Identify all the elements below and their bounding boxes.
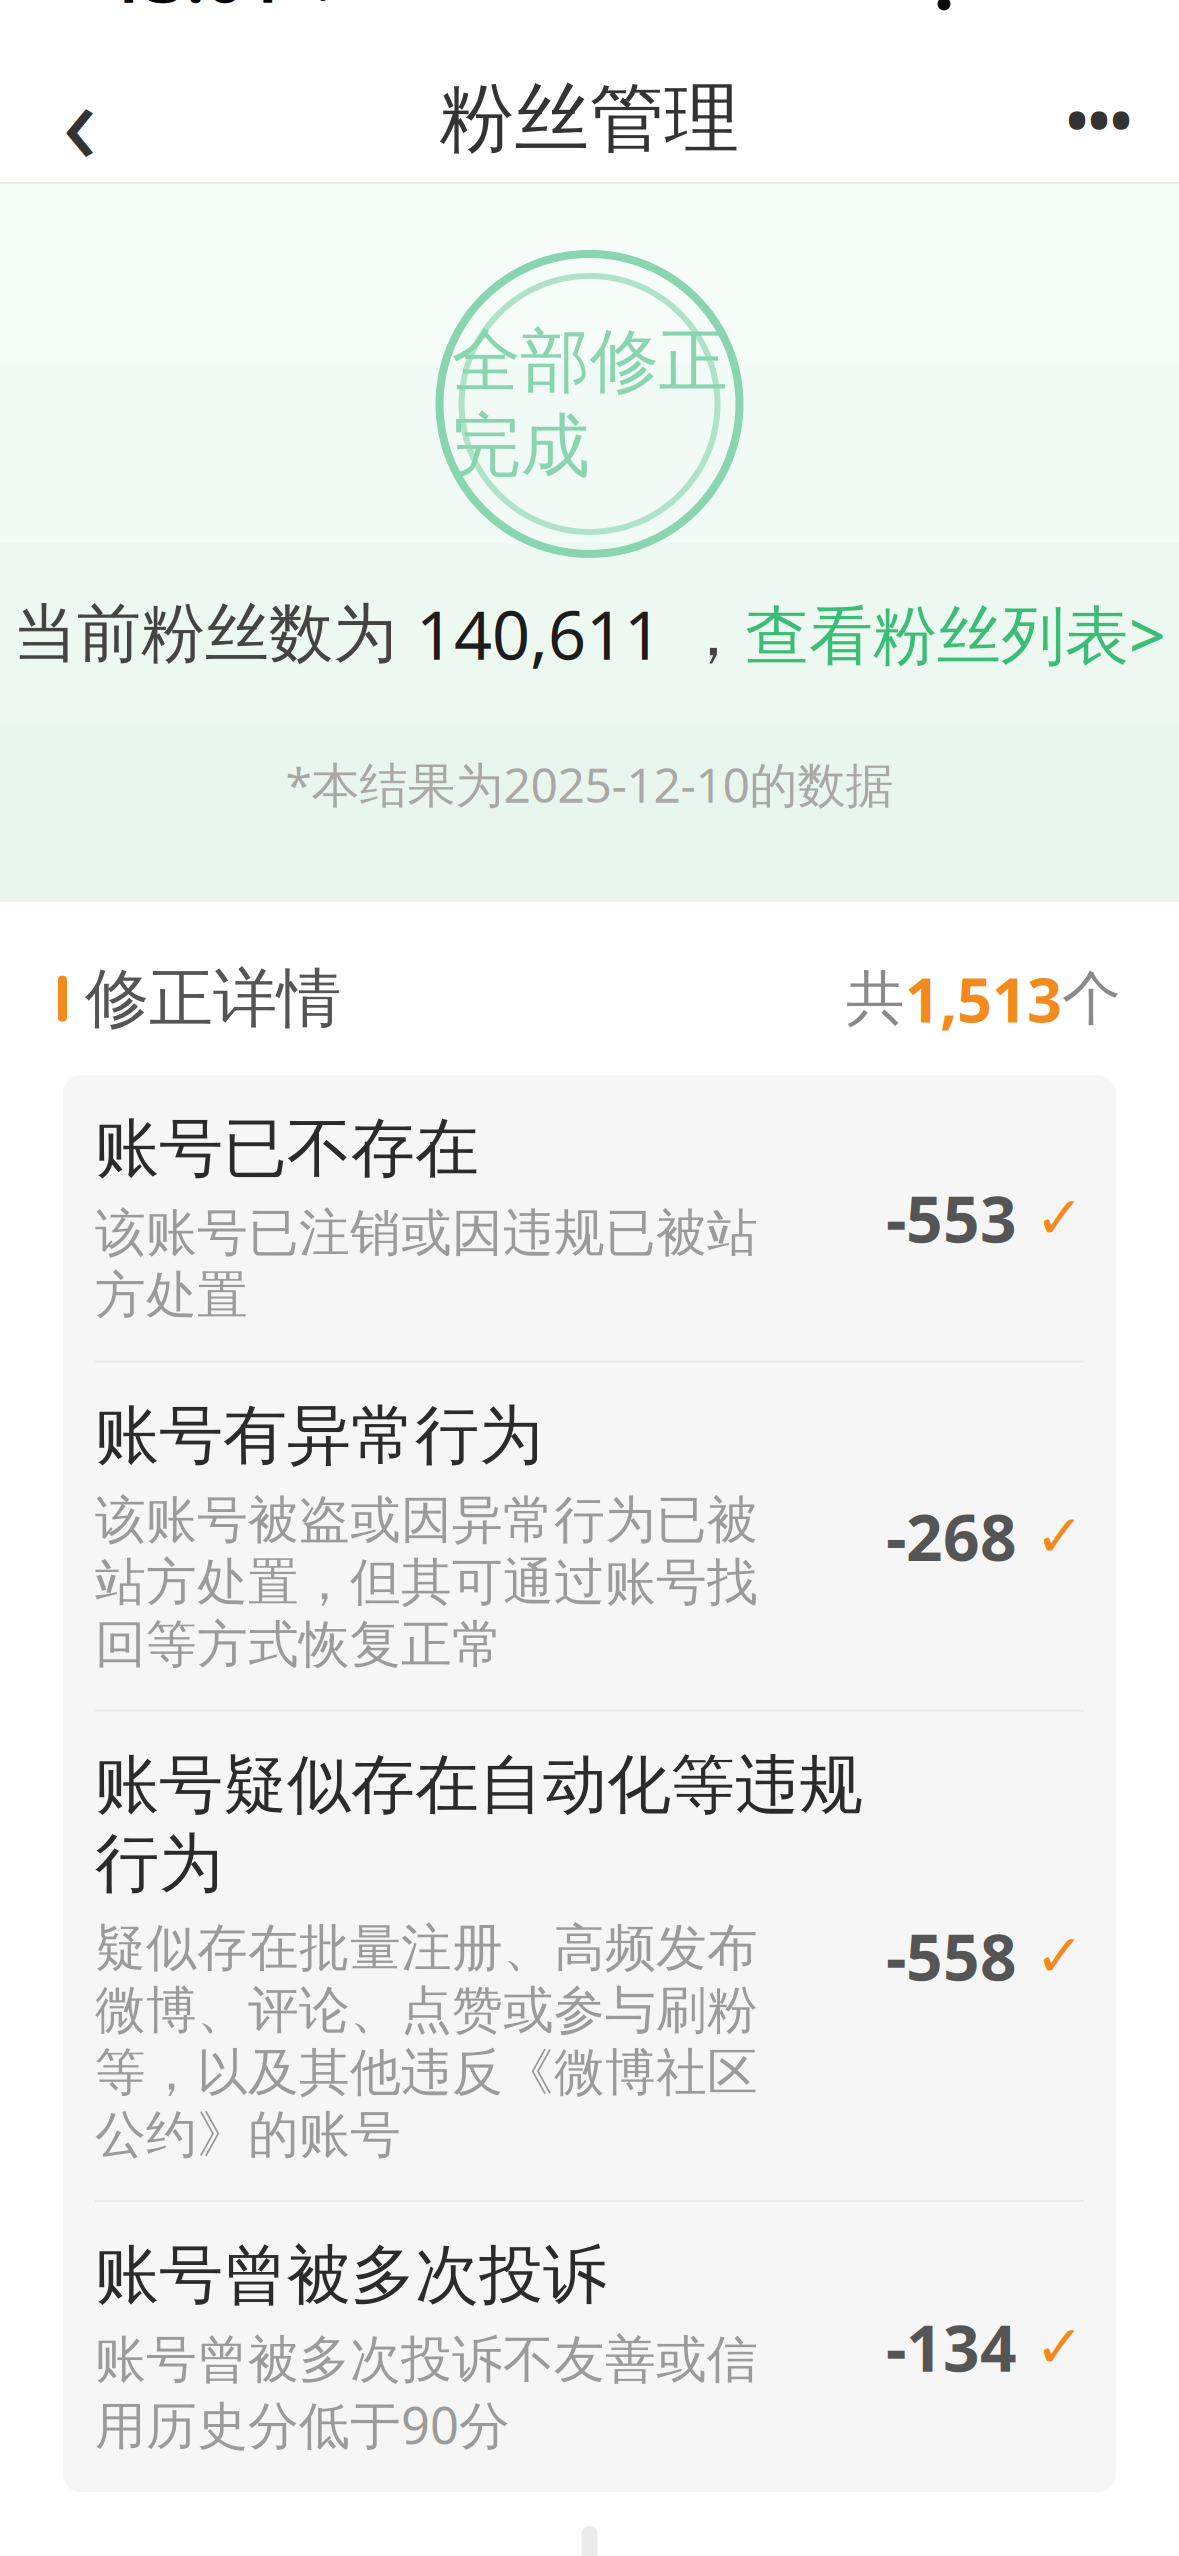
button[interactable]: 账号疑似存在自动化等违规行为 (63, 1712, 1116, 2200)
staticText: ， (662, 595, 745, 673)
staticText: 个 (1062, 963, 1121, 1035)
staticText: 该账号被盗或因异常行为已被站方处置，但其可通过账号找回等方式恢复正常 (95, 1489, 758, 1676)
staticText: -553 (886, 1175, 1017, 1260)
button[interactable]: 账号已不存在 (63, 1075, 1116, 1360)
staticText: 账号已不存在 (95, 1109, 479, 1188)
button[interactable]: 更多 (1039, 59, 1159, 179)
staticText: 当前粉丝数为 (13, 595, 416, 673)
button[interactable]: 账号曾被多次投诉 (63, 2202, 1116, 2492)
staticText: 共 (846, 963, 905, 1035)
staticText: 修正详情 (85, 959, 341, 1038)
staticText: ✓ (1035, 2314, 1084, 2380)
staticText: ✓ (1035, 1185, 1084, 1251)
staticText: 1,513 (905, 958, 1062, 1039)
button[interactable]: 查看粉丝列表> (745, 591, 1166, 676)
staticText: 查看粉丝列表> (745, 591, 1166, 676)
staticText: 粉丝管理 (439, 73, 739, 165)
staticText: -558 (886, 1913, 1017, 1998)
staticText: ••• (1066, 80, 1132, 158)
staticText: 账号疑似存在自动化等违规行为 (95, 1746, 863, 1903)
staticText: 账号曾被多次投诉 (95, 2236, 607, 2314)
staticText: *本结果为2025-12-10的数据 (285, 752, 893, 816)
staticText: -134 (886, 2304, 1017, 2389)
staticText: 13:01 (106, 0, 285, 22)
staticText: ✓ (1035, 1503, 1084, 1569)
staticText: 140,611 (416, 590, 662, 678)
button[interactable]: 返回 (20, 59, 140, 179)
staticText: ✓ (1035, 1923, 1084, 1989)
staticText: -268 (886, 1494, 1017, 1579)
staticText: 账号曾被多次投诉不友善或信用历史分低于90分 (95, 2328, 758, 2458)
staticText: 该账号已注销或因违规已被站方处置 (95, 1202, 758, 1326)
button[interactable]: 账号有异常行为 (63, 1362, 1116, 1710)
staticText: 账号有异常行为 (95, 1396, 543, 1475)
staticText: ‹ (62, 43, 98, 195)
staticText: 全部修正完成 (451, 319, 727, 489)
staticText: 疑似存在批量注册、高频发布微博、评论、点赞或参与刷粉等，以及其他违反《微博社区公… (95, 1917, 758, 2166)
